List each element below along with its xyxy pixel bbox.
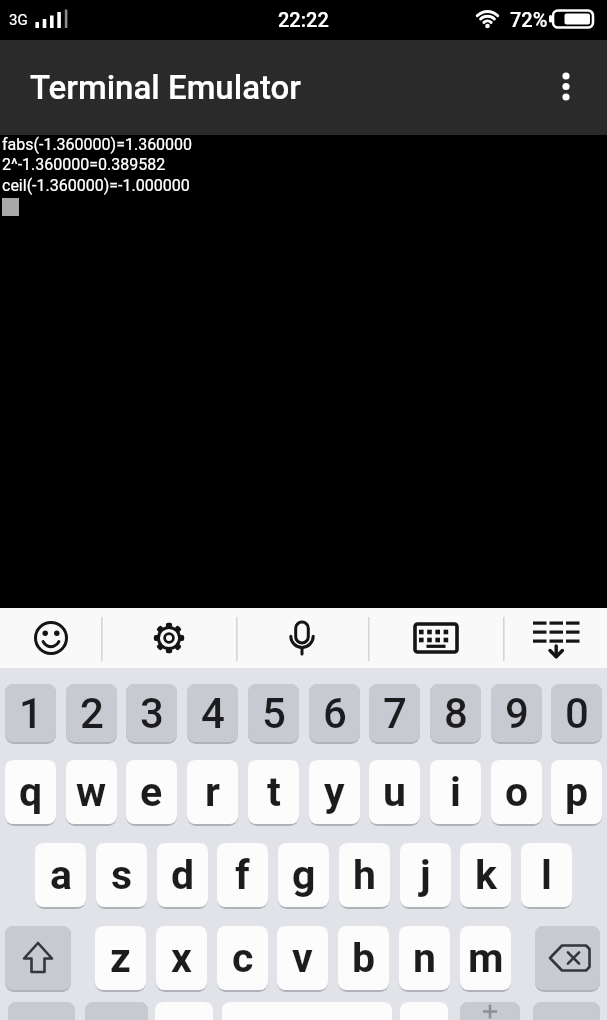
button[interactable]: j — [400, 843, 451, 907]
button[interactable]: m — [460, 926, 511, 990]
button[interactable]: q — [5, 760, 56, 824]
staticText: w — [76, 768, 107, 816]
button[interactable]: a — [35, 843, 86, 907]
button[interactable] — [503, 608, 607, 668]
staticText: ceil(-1.360000)=-1.000000 — [2, 176, 190, 195]
button[interactable] — [155, 1002, 213, 1020]
button[interactable]: fabs(-1.360000)=1.360000 — [0, 135, 607, 608]
staticText: 72% — [510, 8, 548, 31]
staticText: o — [505, 768, 529, 816]
button[interactable] — [0, 608, 101, 668]
button[interactable]: x — [156, 926, 207, 990]
staticText: z — [110, 934, 131, 982]
staticText: a — [50, 851, 72, 899]
staticText: m — [468, 934, 504, 982]
button[interactable] — [368, 608, 503, 668]
button[interactable] — [400, 1002, 448, 1020]
staticText: fabs(-1.360000)=1.360000 — [2, 135, 193, 154]
staticText: 0 — [565, 689, 589, 738]
button[interactable]: 2 — [66, 684, 117, 742]
button[interactable]: z — [95, 926, 146, 990]
button[interactable] — [547, 40, 607, 135]
staticText: d — [171, 851, 195, 899]
button[interactable]: e — [126, 760, 177, 824]
staticText: 1 — [19, 689, 43, 738]
button[interactable]: 7 — [369, 684, 420, 742]
staticText: 2 — [80, 689, 104, 738]
button[interactable]: 1 — [5, 684, 56, 742]
staticText: y — [324, 768, 345, 816]
staticText: q — [19, 768, 43, 816]
staticText: r — [205, 768, 220, 816]
button[interactable]: f — [217, 843, 268, 907]
button[interactable]: 6 — [309, 684, 360, 742]
button[interactable]: g — [278, 843, 329, 907]
staticText: f — [235, 851, 250, 899]
staticText: 3 — [140, 689, 164, 738]
button[interactable]: l — [521, 843, 572, 907]
staticText: Terminal Emulator — [30, 68, 301, 107]
staticText: v — [292, 934, 313, 982]
button[interactable]: i — [430, 760, 481, 824]
button[interactable]: y — [309, 760, 360, 824]
button[interactable]: 4 — [187, 684, 238, 742]
staticText: 9 — [505, 689, 529, 738]
staticText: l — [541, 851, 552, 899]
button[interactable] — [236, 608, 368, 668]
staticText: p — [565, 768, 589, 816]
staticText: 7 — [383, 689, 407, 738]
button[interactable] — [460, 1002, 520, 1020]
staticText: c — [232, 934, 254, 982]
staticText: n — [413, 934, 436, 982]
button[interactable] — [8, 1002, 75, 1020]
button[interactable]: b — [338, 926, 389, 990]
button[interactable]: t — [248, 760, 299, 824]
button[interactable]: 0 — [551, 684, 602, 742]
button[interactable] — [5, 926, 71, 990]
button[interactable]: 3 — [126, 684, 177, 742]
button[interactable]: u — [369, 760, 420, 824]
staticText: s — [111, 851, 133, 899]
staticText: g — [292, 851, 316, 899]
staticText: u — [383, 768, 406, 816]
button[interactable]: c — [217, 926, 268, 990]
button[interactable]: 8 — [430, 684, 481, 742]
button[interactable]: r — [187, 760, 238, 824]
staticText: 2^-1.360000=0.389582 — [2, 155, 166, 174]
button[interactable] — [85, 1002, 148, 1020]
staticText: 22:22 — [278, 8, 329, 31]
staticText: b — [352, 934, 376, 982]
button[interactable]: n — [399, 926, 450, 990]
button[interactable] — [101, 608, 236, 668]
staticText: k — [475, 851, 497, 899]
staticText: t — [267, 768, 281, 816]
staticText: j — [420, 851, 431, 899]
button[interactable]: w — [66, 760, 117, 824]
button[interactable]: v — [277, 926, 328, 990]
button[interactable]: s — [96, 843, 147, 907]
staticText: x — [171, 934, 192, 982]
staticText: 8 — [444, 689, 468, 738]
staticText: 6 — [323, 689, 347, 738]
button[interactable] — [533, 1002, 600, 1020]
button[interactable]: d — [157, 843, 208, 907]
staticText: i — [450, 768, 461, 816]
staticText: 3G — [9, 11, 28, 29]
staticText: h — [353, 851, 376, 899]
button[interactable]: 5 — [248, 684, 299, 742]
staticText: 5 — [262, 689, 286, 738]
button[interactable]: p — [551, 760, 602, 824]
staticText: e — [140, 768, 163, 816]
button[interactable]: 9 — [491, 684, 542, 742]
button[interactable] — [535, 926, 600, 990]
button[interactable]: k — [460, 843, 511, 907]
button[interactable]: o — [491, 760, 542, 824]
button[interactable]: h — [339, 843, 390, 907]
staticText: 4 — [201, 689, 225, 738]
